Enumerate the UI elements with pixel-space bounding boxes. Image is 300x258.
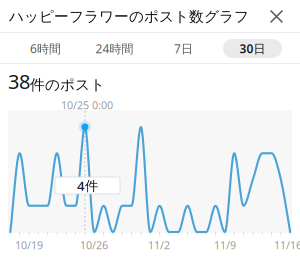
staticText: ハッピーフラワーのポスト数グラフ — [9, 7, 249, 25]
staticText: 11/9 — [214, 238, 236, 252]
staticText: 10/19 — [15, 238, 43, 252]
staticText: 24時間 — [95, 40, 133, 56]
staticText: 10/26 — [80, 238, 108, 252]
staticText: 7日 — [174, 40, 193, 56]
staticText: 30日 — [239, 40, 265, 56]
staticText: 4件 — [77, 177, 98, 194]
staticText: 38件のポスト — [8, 68, 105, 95]
staticText: 11/2 — [148, 238, 170, 252]
button[interactable]: 24時間 — [80, 39, 149, 58]
staticText: 11/16 — [274, 238, 300, 252]
button[interactable]: 閉じる — [261, 2, 292, 31]
button[interactable]: 7日 — [149, 39, 218, 58]
staticText: 6時間 — [30, 40, 61, 56]
staticText: 10/25 0:00 — [61, 98, 113, 112]
button[interactable]: 30日 — [218, 39, 287, 58]
button[interactable]: 6時間 — [11, 39, 80, 58]
